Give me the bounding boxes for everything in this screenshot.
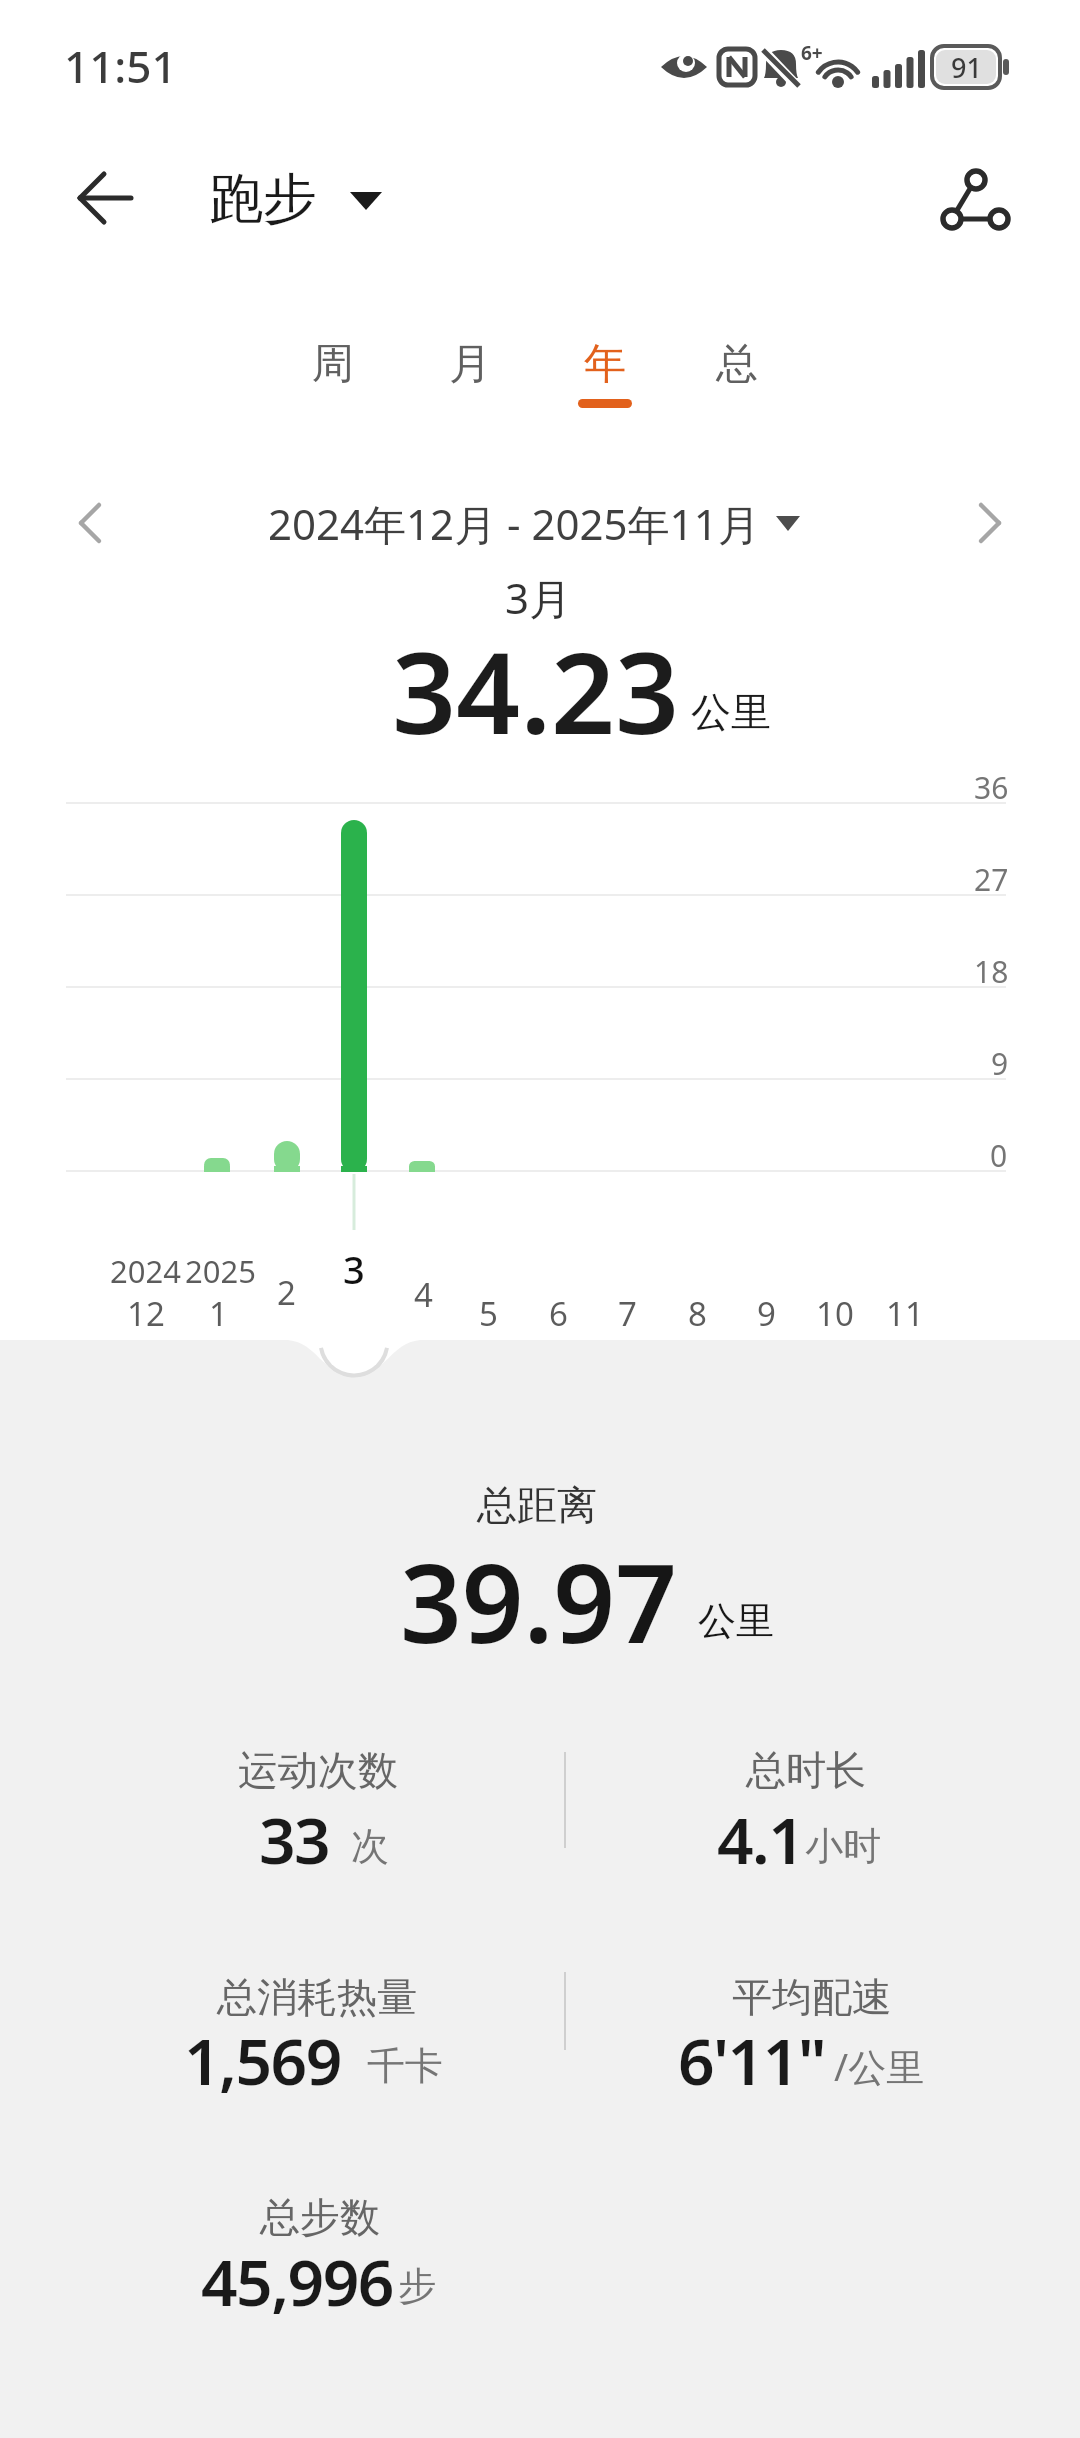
staticText: 10 [816, 1291, 854, 1336]
staticText: 11 [886, 1291, 924, 1336]
staticText: 3月 [505, 569, 572, 626]
staticText: 总时长 [746, 1745, 866, 1795]
staticText: 6 [549, 1291, 568, 1336]
staticText: 总消耗热量 [217, 1972, 417, 2022]
staticText: 平均配速 [732, 1972, 892, 2022]
staticText: 总距离 [477, 1480, 597, 1530]
staticText: 4.1 [717, 1796, 804, 1883]
button[interactable] [935, 160, 1025, 240]
staticText: 总步数 [260, 2192, 380, 2242]
staticText: 年 [584, 338, 626, 391]
staticText: 月 [449, 338, 491, 391]
staticText: 3 [343, 1243, 365, 1295]
button[interactable] [290, 330, 380, 410]
button[interactable] [560, 330, 650, 410]
button[interactable] [200, 160, 390, 240]
staticText: 6'11" [678, 2017, 826, 2104]
staticText: 11:51 [64, 36, 177, 96]
staticText: 12 [127, 1291, 165, 1336]
staticText: 39.97 [400, 1528, 677, 1675]
staticText: 7 [618, 1291, 637, 1336]
button[interactable] [55, 485, 135, 565]
button[interactable] [425, 330, 515, 410]
staticText: 1 [209, 1291, 228, 1336]
button[interactable] [270, 485, 810, 565]
button[interactable] [945, 485, 1025, 565]
staticText: 18 [974, 951, 1009, 992]
staticText: 公里 [691, 687, 771, 737]
staticText: 2 [277, 1270, 296, 1315]
staticText: 1,569 [184, 2017, 341, 2104]
staticText: 周 [312, 338, 354, 391]
staticText: 9 [991, 1043, 1009, 1084]
staticText: 4 [414, 1272, 433, 1317]
staticText: 34.23 [392, 614, 680, 767]
staticText: 0 [990, 1135, 1008, 1176]
staticText: /公里 [834, 2040, 925, 2092]
staticText: 运动次数 [238, 1745, 398, 1795]
staticText: 2025 [185, 1250, 256, 1292]
staticText: 2024 [110, 1250, 181, 1292]
staticText: 跑步 [209, 165, 317, 233]
staticText: 27 [974, 859, 1009, 900]
staticText: 公里 [698, 1597, 774, 1645]
staticText: 次 [351, 1822, 389, 1870]
staticText: 5 [479, 1291, 498, 1336]
staticText: 33 [259, 1796, 330, 1883]
staticText: 45,996 [201, 2238, 393, 2325]
button[interactable] [60, 158, 150, 240]
staticText: 36 [974, 767, 1009, 808]
staticText: 总 [716, 338, 758, 391]
staticText: 9 [757, 1291, 776, 1336]
staticText: 小时 [805, 1822, 881, 1870]
staticText: 步 [398, 2262, 436, 2310]
staticText: 2024年12月 - 2025年11月 [268, 495, 760, 552]
staticText: 千卡 [367, 2042, 443, 2090]
staticText: 91 [951, 49, 982, 86]
button[interactable] [692, 330, 782, 410]
staticText: 6+ [801, 40, 823, 66]
staticText: 8 [688, 1291, 707, 1336]
button[interactable] [310, 1298, 400, 1388]
